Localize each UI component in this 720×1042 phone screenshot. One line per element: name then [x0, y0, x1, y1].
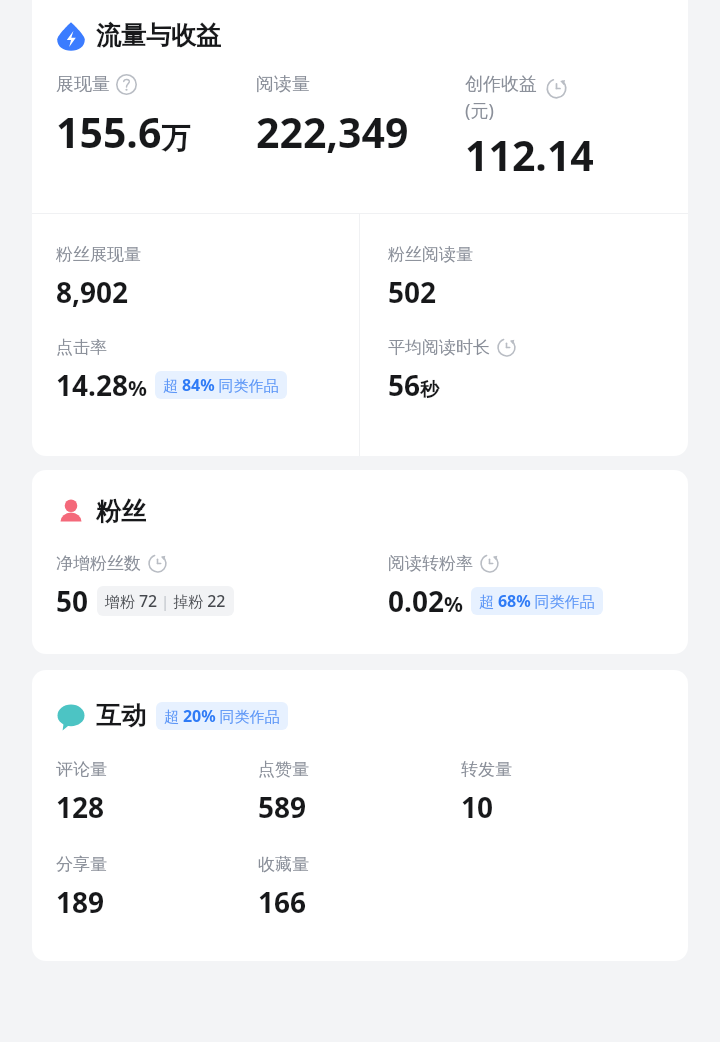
staticText: 点赞量 — [258, 759, 309, 780]
button[interactable]: 分享量 — [56, 854, 258, 921]
staticText: 10 — [461, 788, 494, 826]
staticText: 展现量 — [56, 73, 110, 96]
other: Help — [116, 74, 137, 95]
staticText: 粉丝阅读量 — [388, 244, 473, 265]
button[interactable]: 创作收益 — [465, 73, 664, 183]
button[interactable]: 超 20% 同类作品 — [156, 702, 288, 730]
button[interactable]: Fans — [32, 470, 688, 527]
staticText: 166 — [258, 883, 307, 921]
staticText: 502 — [388, 273, 437, 311]
staticText: 增粉 72 | 掉粉 22 — [105, 590, 226, 612]
button[interactable]: 转发量 — [461, 759, 664, 826]
button[interactable]: 点赞量 — [258, 759, 461, 826]
button[interactable]: 超 84% 同类作品 — [155, 371, 287, 399]
staticText: 评论量 — [56, 759, 107, 780]
staticText: 创作收益 — [465, 73, 537, 96]
other: Interaction — [56, 701, 86, 731]
button[interactable]: 净增粉丝数 — [56, 553, 360, 620]
button[interactable]: Traffic and earnings — [32, 0, 688, 51]
button[interactable]: 粉丝展现量 — [32, 214, 359, 404]
staticText: 56秒 — [388, 366, 440, 404]
staticText: 589 — [258, 788, 307, 826]
staticText: 粉丝 — [96, 496, 146, 527]
staticText: 流量与收益 — [96, 20, 221, 51]
other: History — [479, 553, 500, 574]
staticText: 平均阅读时长 — [388, 337, 490, 358]
staticText: (元) — [465, 98, 494, 123]
staticText: 超 20% 同类作品 — [164, 705, 280, 727]
other: History — [147, 553, 168, 574]
other: History — [545, 77, 568, 100]
staticText: 转发量 — [461, 759, 512, 780]
staticText: 超 68% 同类作品 — [479, 590, 595, 612]
staticText: 8,902 — [56, 273, 129, 311]
staticText: 0.02% — [388, 582, 463, 620]
staticText: 超 84% 同类作品 — [163, 374, 279, 396]
staticText: 互动 — [96, 700, 146, 731]
button[interactable]: 收藏量 — [258, 854, 461, 921]
other: History — [496, 337, 517, 358]
button[interactable]: 评论量 — [56, 759, 258, 826]
staticText: 粉丝展现量 — [56, 244, 141, 265]
staticText: 222,349 — [256, 104, 409, 160]
staticText: 收藏量 — [258, 854, 309, 875]
button[interactable]: 展现量 — [56, 73, 256, 160]
other: Fans — [56, 497, 86, 527]
staticText: 净增粉丝数 — [56, 553, 141, 574]
staticText: 14.28% — [56, 366, 147, 404]
other: Traffic and earnings — [56, 21, 86, 51]
button[interactable]: 阅读转粉率 — [360, 553, 664, 620]
button[interactable]: 增粉 72 | 掉粉 22 — [97, 586, 234, 616]
staticText: 阅读量 — [256, 73, 310, 96]
staticText: 155.6万 — [56, 104, 191, 160]
staticText: 189 — [56, 883, 105, 921]
button[interactable]: 粉丝阅读量 — [360, 214, 688, 404]
staticText: 阅读转粉率 — [388, 553, 473, 574]
button[interactable]: 超 68% 同类作品 — [471, 587, 603, 615]
staticText: 112.14 — [465, 127, 594, 183]
button[interactable]: 阅读量 — [256, 73, 465, 160]
button[interactable]: Interaction — [32, 670, 688, 731]
staticText: 分享量 — [56, 854, 107, 875]
staticText: 50 — [56, 582, 89, 620]
staticText: 点击率 — [56, 337, 107, 358]
staticText: 128 — [56, 788, 105, 826]
